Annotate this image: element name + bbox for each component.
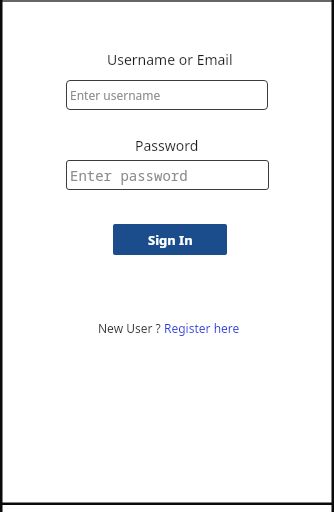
staticText: Enter username bbox=[70, 87, 161, 103]
button[interactable]: Sign In bbox=[113, 224, 227, 255]
staticText: Password bbox=[135, 136, 199, 155]
button[interactable]: Enter password bbox=[66, 160, 269, 190]
staticText: Enter password bbox=[70, 166, 188, 185]
staticText: New User ? bbox=[98, 320, 164, 336]
staticText: Sign In bbox=[148, 231, 193, 249]
button[interactable]: Register here bbox=[164, 320, 240, 336]
button[interactable]: Enter username bbox=[66, 80, 268, 110]
staticText: Username or Email bbox=[107, 50, 233, 69]
